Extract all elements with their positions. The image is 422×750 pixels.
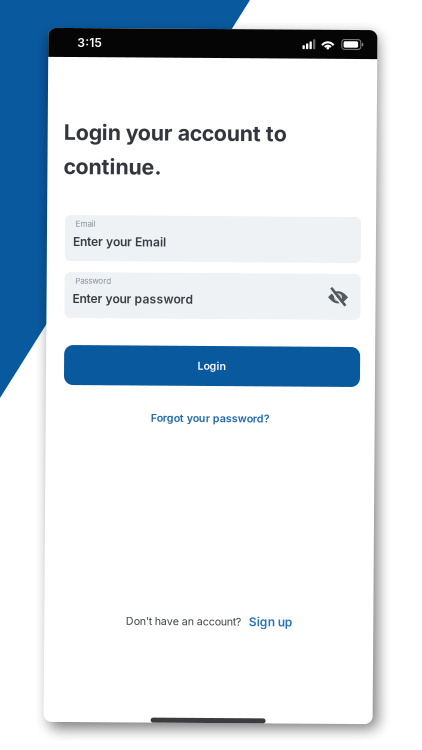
staticText: Enter your password: [72, 292, 192, 307]
staticText: Email: [74, 220, 94, 229]
staticText: 3:15: [75, 36, 100, 51]
staticText: Login: [197, 360, 226, 372]
button[interactable]: Password: [64, 273, 360, 319]
button[interactable]: Forgot your password?: [151, 412, 270, 425]
button[interactable]: Show password: [327, 285, 348, 306]
button[interactable]: Login: [64, 346, 360, 386]
staticText: continue.: [62, 155, 160, 180]
staticText: Don't have an account?: [127, 615, 242, 628]
staticText: Enter your Email: [72, 235, 165, 250]
staticText: Forgot your password?: [151, 412, 270, 425]
button[interactable]: Sign up: [250, 614, 293, 629]
staticText: Password: [74, 277, 110, 286]
staticText: Sign up: [250, 614, 293, 629]
staticText: Login your account to: [62, 120, 285, 146]
button[interactable]: Email: [64, 216, 360, 262]
